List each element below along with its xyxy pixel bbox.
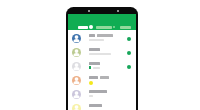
button[interactable] <box>68 58 136 72</box>
button[interactable] <box>68 44 136 58</box>
button[interactable] <box>68 14 136 30</box>
button[interactable] <box>68 30 136 44</box>
button[interactable] <box>68 100 136 110</box>
button[interactable] <box>68 72 136 86</box>
button[interactable] <box>68 86 136 100</box>
